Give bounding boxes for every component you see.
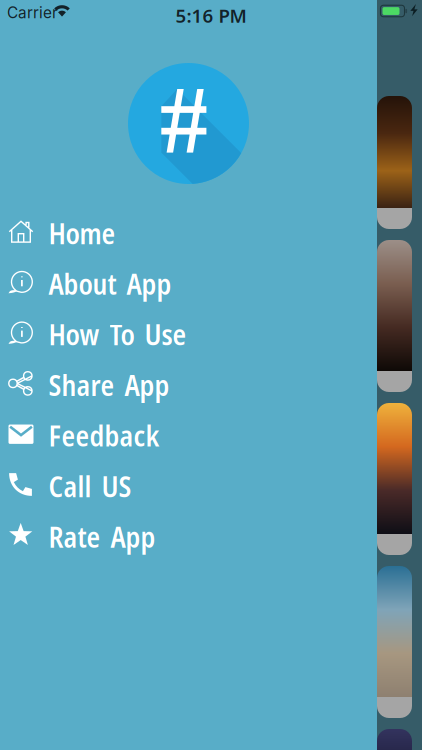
staticText: Use (144, 315, 186, 353)
staticText: App (110, 518, 155, 556)
staticText: 5:16 PM (175, 3, 246, 28)
staticText: Share (48, 366, 114, 404)
staticText: App (124, 366, 169, 404)
staticText: About (48, 265, 116, 303)
staticText: Feedback (48, 417, 159, 455)
staticText: US (101, 467, 131, 505)
button[interactable]: About (0, 259, 377, 309)
staticText: Rate (48, 518, 100, 556)
staticText: Carrier (7, 3, 58, 22)
button[interactable]: Rate (0, 512, 377, 562)
button[interactable]: Feedback (0, 410, 377, 461)
button[interactable]: Home (0, 208, 377, 259)
staticText: To (109, 315, 134, 353)
button[interactable]: Share (0, 360, 377, 410)
staticText: How (48, 315, 99, 353)
button[interactable]: How (0, 309, 377, 360)
staticText: App (126, 265, 171, 303)
staticText: Call (48, 467, 91, 505)
staticText: Home (48, 214, 115, 252)
button[interactable]: Call (0, 461, 377, 512)
